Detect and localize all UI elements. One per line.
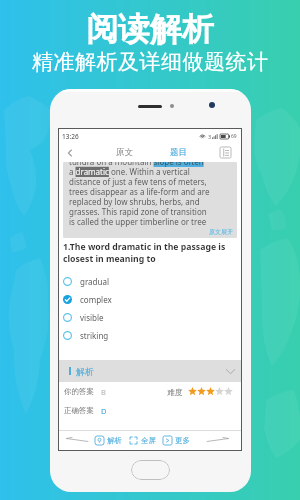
button[interactable]: Home	[131, 460, 170, 480]
staticText: striking	[80, 330, 109, 341]
button[interactable]: Back	[59, 143, 81, 162]
button[interactable]: complex	[63, 290, 237, 308]
staticText: 解析	[76, 366, 94, 377]
button[interactable]: 更多	[161, 430, 192, 450]
staticText: D	[101, 406, 107, 416]
staticText: 阅读解析	[86, 9, 214, 49]
button[interactable]: Question list	[214, 143, 236, 162]
staticText: 解析	[107, 436, 122, 445]
button[interactable]: 解析	[93, 430, 124, 450]
staticText: 13:26	[62, 132, 79, 141]
staticText: gradual	[80, 276, 109, 287]
staticText: 全屏	[141, 436, 156, 445]
button[interactable]: 原文	[107, 143, 141, 162]
button[interactable]: Next question	[201, 430, 235, 450]
button[interactable]: 解析	[59, 360, 241, 382]
staticText: 难度	[167, 387, 183, 397]
staticText: tundra on a mountain slope is often a dr…	[69, 162, 210, 227]
staticText: 正确答案	[64, 406, 94, 415]
staticText: B	[101, 387, 106, 397]
button[interactable]: gradual	[63, 272, 237, 290]
button[interactable]: 全屏	[127, 430, 158, 450]
staticText: visible	[80, 312, 104, 323]
staticText: 69	[231, 133, 237, 140]
button[interactable]: striking	[63, 326, 237, 344]
staticText: 1.The word dramatic in the passage is cl…	[63, 241, 237, 264]
staticText: 原文	[116, 147, 133, 158]
button[interactable]: visible	[63, 308, 237, 326]
staticText: 更多	[175, 436, 190, 445]
staticText: 你的答案	[64, 387, 94, 396]
staticText: complex	[80, 294, 112, 305]
staticText: 原文展开	[209, 228, 233, 236]
staticText: 精准解析及详细做题统计	[32, 49, 269, 75]
staticText: 3	[208, 133, 212, 140]
button[interactable]: Previous question	[62, 430, 90, 450]
staticText: 题目	[170, 147, 187, 158]
button[interactable]: 题目	[161, 143, 195, 162]
